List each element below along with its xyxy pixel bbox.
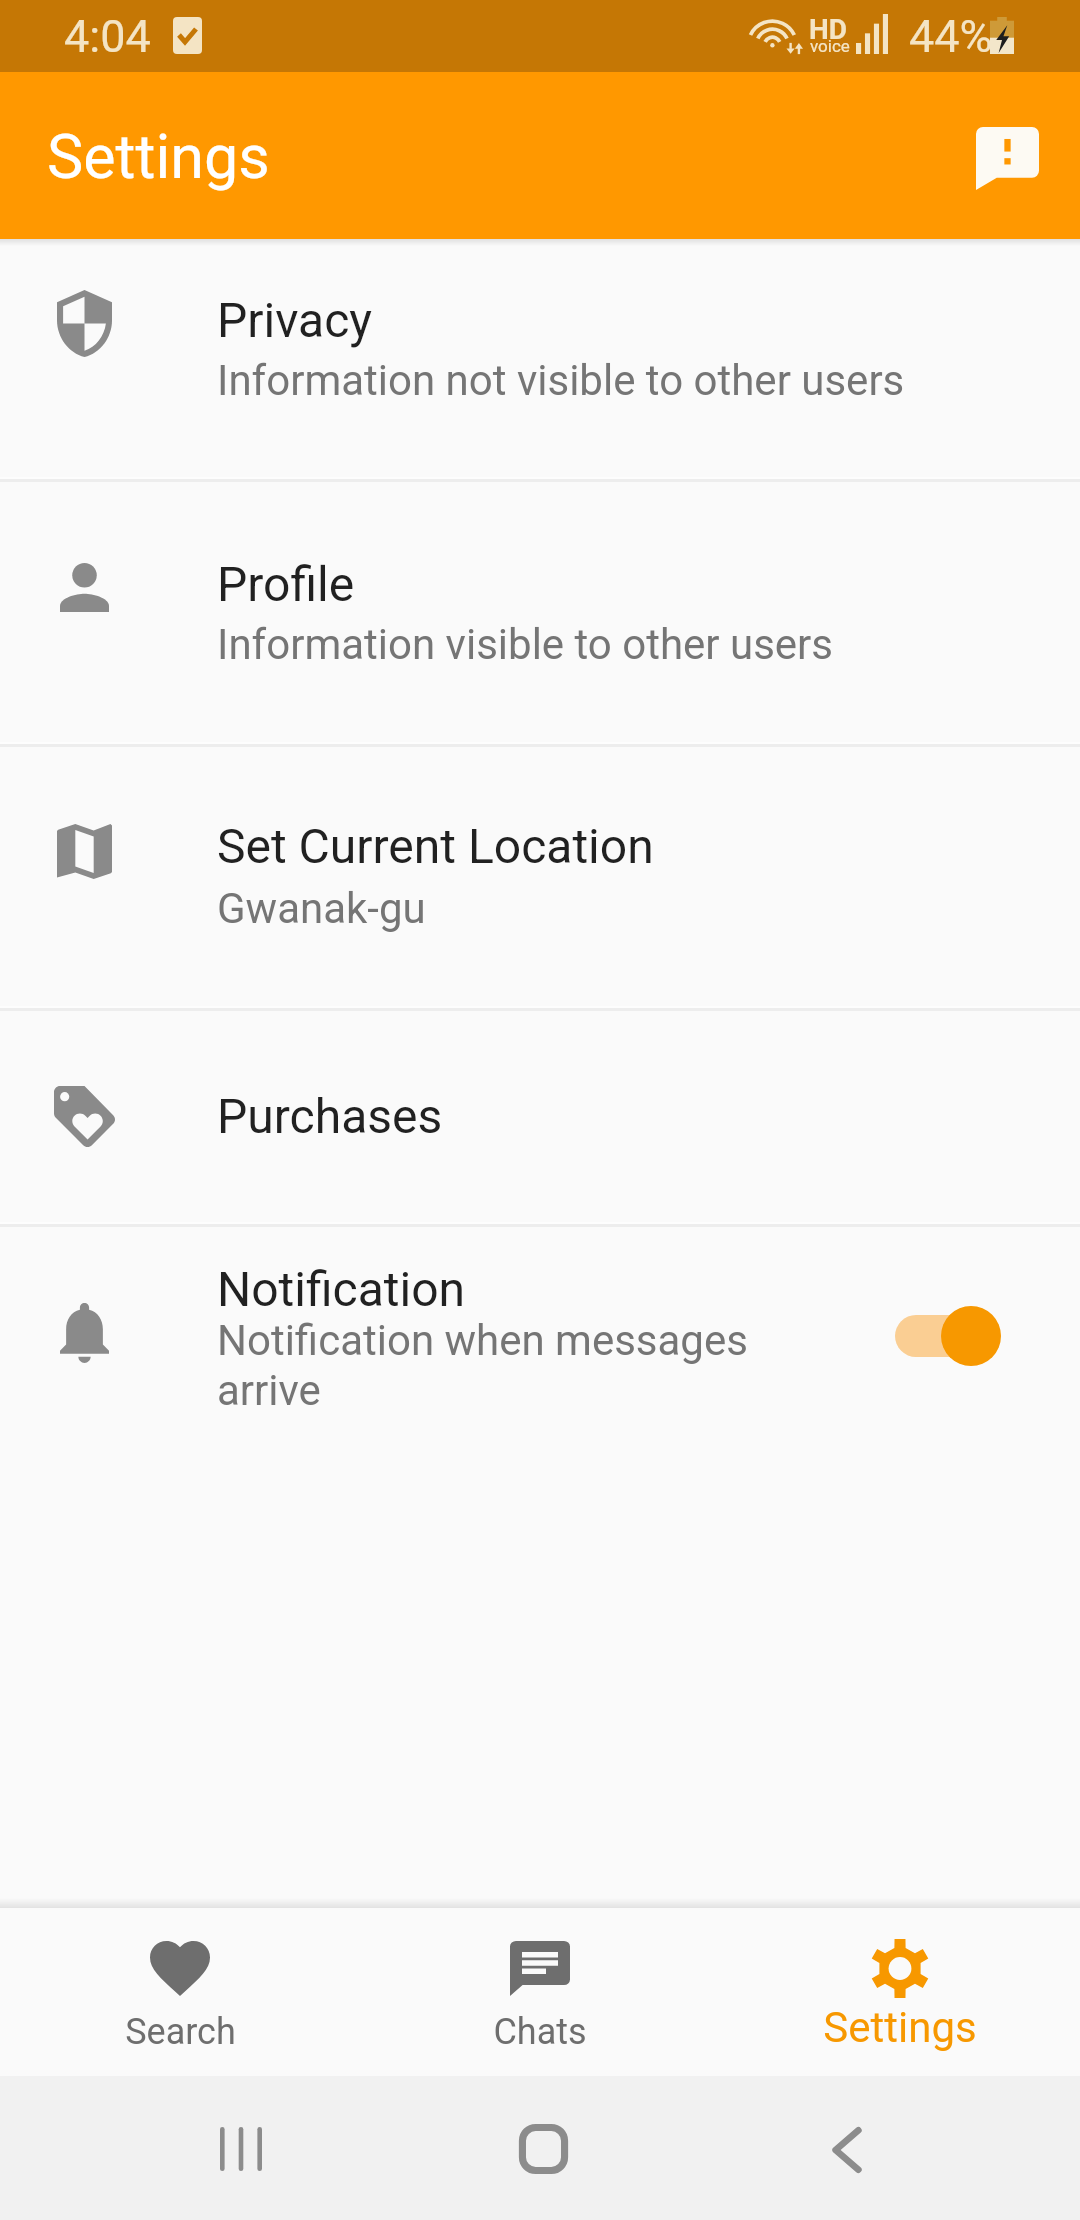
button[interactable]: Chats [360, 1908, 720, 2076]
button[interactable]: Profile [0, 481, 1080, 744]
staticText: Information visible to other users [217, 620, 1037, 669]
staticText: Search [125, 2011, 236, 2053]
button[interactable]: Privacy [0, 242, 1080, 479]
staticText: Notification [217, 1261, 466, 1317]
button[interactable]: Back [765, 2098, 927, 2198]
staticText: Gwanak-gu [217, 884, 1037, 933]
button[interactable]: Settings [720, 1908, 1080, 2076]
staticText: Purchases [217, 1088, 443, 1144]
button[interactable]: Notification [0, 1226, 1080, 1470]
staticText: 4:04 [64, 10, 151, 63]
staticText: Information not visible to other users [217, 356, 1037, 405]
staticText: Chats [493, 2011, 587, 2053]
button[interactable]: Recents [160, 2098, 322, 2198]
staticText: Notification when messages [217, 1316, 777, 1365]
staticText: Settings [823, 2003, 977, 2052]
button[interactable]: Set Current Location [0, 746, 1080, 1008]
staticText: 44% [909, 10, 993, 63]
staticText: voice [810, 36, 850, 56]
staticText: Set Current Location [217, 818, 654, 874]
button[interactable]: Feedback [955, 106, 1059, 210]
staticText: arrive [217, 1366, 777, 1415]
button[interactable]: Purchases [0, 1010, 1080, 1224]
staticText: HD [809, 13, 847, 46]
button[interactable]: Search [0, 1908, 360, 2076]
button[interactable]: Notification toggle, on [880, 1288, 1006, 1384]
staticText: Profile [217, 556, 355, 612]
staticText: Settings [47, 121, 270, 192]
button[interactable]: Home [463, 2098, 625, 2198]
staticText: Privacy [217, 292, 373, 348]
